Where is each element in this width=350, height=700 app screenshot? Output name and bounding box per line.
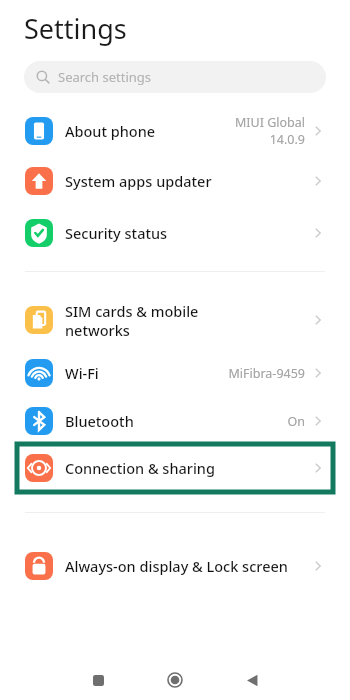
staticText: Search settings	[58, 68, 152, 86]
staticText: Security status	[65, 223, 168, 243]
button[interactable]: Home	[155, 660, 195, 700]
button[interactable]: Bluetooth	[0, 398, 350, 444]
button[interactable]: Wi-Fi	[0, 348, 350, 398]
staticText: On	[287, 413, 305, 430]
button[interactable]: Security status	[0, 207, 350, 259]
staticText: System apps updater	[65, 171, 212, 191]
button[interactable]: About phone	[0, 107, 350, 155]
staticText: MIUI Global	[234, 114, 305, 131]
staticText: Settings	[24, 10, 127, 47]
staticText: About phone	[65, 121, 156, 141]
staticText: Bluetooth	[65, 411, 134, 431]
button[interactable]: Always-on display & Lock screen	[0, 541, 350, 591]
staticText: Connection & sharing	[65, 458, 215, 478]
staticText: MiFibra-9459	[228, 365, 305, 382]
staticText: SIM cards & mobile networks	[65, 301, 265, 340]
staticText: Wi-Fi	[65, 363, 99, 383]
button[interactable]: System apps updater	[0, 155, 350, 207]
button[interactable]: Recent apps	[78, 660, 118, 700]
button[interactable]: Back	[232, 660, 272, 700]
staticText: 14.0.9	[269, 131, 305, 148]
button[interactable]: Search settings	[24, 61, 326, 93]
button[interactable]: SIM cards & mobile networks	[0, 292, 350, 348]
button[interactable]: Connection & sharing	[17, 444, 333, 492]
staticText: Always-on display & Lock screen	[65, 556, 295, 576]
